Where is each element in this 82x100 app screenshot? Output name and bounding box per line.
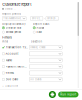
staticText: Payment Method	[6, 65, 27, 68]
staticText: Without period	[6, 31, 21, 33]
staticText: All Dates	[30, 78, 41, 81]
staticText: Report basis	[33, 23, 49, 26]
staticText: General options	[5, 7, 15, 10]
button[interactable]: Transaction Type	[2, 44, 28, 51]
staticText: Cash	[36, 31, 41, 33]
staticText: Run report	[60, 93, 76, 96]
button[interactable]: Invoice, Check	[29, 45, 62, 49]
button[interactable]: Print	[49, 91, 56, 98]
button[interactable]: This Month-to-date	[2, 16, 26, 21]
button[interactable]: + Add a filter	[2, 84, 18, 88]
staticText: 07/31/2024	[47, 17, 57, 20]
button[interactable]: 07/01/2024	[30, 16, 43, 21]
button[interactable]	[29, 52, 62, 56]
button[interactable]: Cash	[33, 30, 55, 34]
button[interactable]: Terms	[2, 70, 28, 76]
button[interactable]: Run report	[58, 92, 78, 97]
button[interactable]: Without period	[2, 30, 32, 34]
button[interactable]: Payment Method	[2, 63, 28, 70]
staticText: Due Date	[6, 78, 19, 81]
staticText: Filters	[2, 35, 12, 39]
button[interactable]: Accrual	[33, 26, 55, 30]
staticText: Invoice, Check	[30, 46, 45, 49]
button[interactable]: Name	[2, 57, 28, 63]
button[interactable]: All Dates	[29, 77, 62, 81]
staticText: Terms	[6, 71, 14, 75]
button[interactable]	[29, 71, 62, 75]
button[interactable]: Due Date	[2, 76, 28, 83]
staticText: 07/01/2024	[31, 17, 42, 20]
button[interactable]	[29, 58, 62, 62]
staticText: –	[44, 17, 45, 20]
staticText: Account	[6, 52, 19, 55]
staticText: Divide by Total	[6, 26, 22, 29]
staticText: Accrual	[36, 26, 44, 29]
button[interactable]: Account	[2, 51, 28, 57]
staticText: Report period	[2, 12, 21, 15]
button[interactable]: General options	[2, 8, 16, 10]
button[interactable]: 07/31/2024	[46, 16, 58, 21]
staticText: Name	[6, 59, 13, 62]
staticText: Customize report	[2, 2, 31, 7]
staticText: + Add a filter	[2, 85, 18, 88]
staticText: Transaction Type	[6, 46, 27, 49]
staticText: Filter	[2, 40, 8, 43]
button[interactable]: Divide by Total	[2, 26, 32, 30]
button[interactable]	[29, 64, 62, 69]
staticText: This Month-to-date	[3, 17, 23, 20]
staticText: Selection	[30, 40, 41, 43]
staticText: Display columns by	[2, 23, 25, 26]
